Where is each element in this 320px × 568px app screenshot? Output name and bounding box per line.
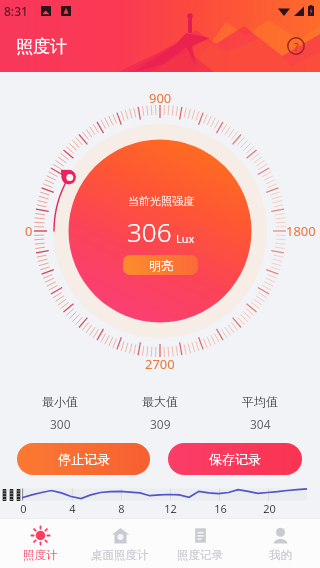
button[interactable]: 照度计 (0, 519, 80, 568)
staticText: 2700 (145, 355, 175, 373)
staticText: 300 (50, 416, 71, 432)
staticText: 我的 (269, 548, 292, 562)
button[interactable]: 我的 (240, 519, 320, 568)
staticText: 照度计 (23, 548, 58, 562)
staticText: 0 (20, 501, 27, 516)
staticText: 304 (250, 416, 271, 432)
staticText: 当前光照强度 (128, 194, 194, 208)
staticText: 平均值 (242, 394, 278, 409)
staticText: 12 (164, 501, 177, 516)
button[interactable]: 停止记录 (17, 443, 150, 475)
staticText: 8:31 (4, 3, 28, 19)
staticText: 最大值 (142, 394, 178, 409)
staticText: 4 (69, 501, 76, 516)
staticText: 20 (263, 501, 276, 516)
staticText: 桌面照度计 (91, 548, 149, 562)
staticText: 306 (127, 214, 172, 249)
staticText: 0 (25, 222, 33, 240)
staticText: 照度记录 (177, 548, 223, 562)
staticText: 8 (118, 501, 125, 516)
button[interactable]: 桌面照度计 (80, 519, 160, 568)
staticText: 停止记录 (58, 451, 110, 467)
staticText: 最小值 (42, 394, 78, 409)
button[interactable]: Help (283, 33, 309, 59)
staticText: Lux (176, 231, 195, 246)
staticText: 明亮 (149, 258, 173, 273)
staticText: ? (294, 39, 299, 54)
button[interactable]: 照度记录 (160, 519, 240, 568)
staticText: 309 (150, 416, 171, 432)
staticText: 保存记录 (209, 451, 261, 467)
button[interactable]: 保存记录 (168, 443, 302, 475)
staticText: 16 (214, 501, 227, 516)
staticText: 照度计 (16, 36, 67, 57)
button[interactable]: 明亮 (123, 255, 198, 275)
staticText: 900 (149, 89, 172, 107)
staticText: 1800 (286, 222, 316, 240)
